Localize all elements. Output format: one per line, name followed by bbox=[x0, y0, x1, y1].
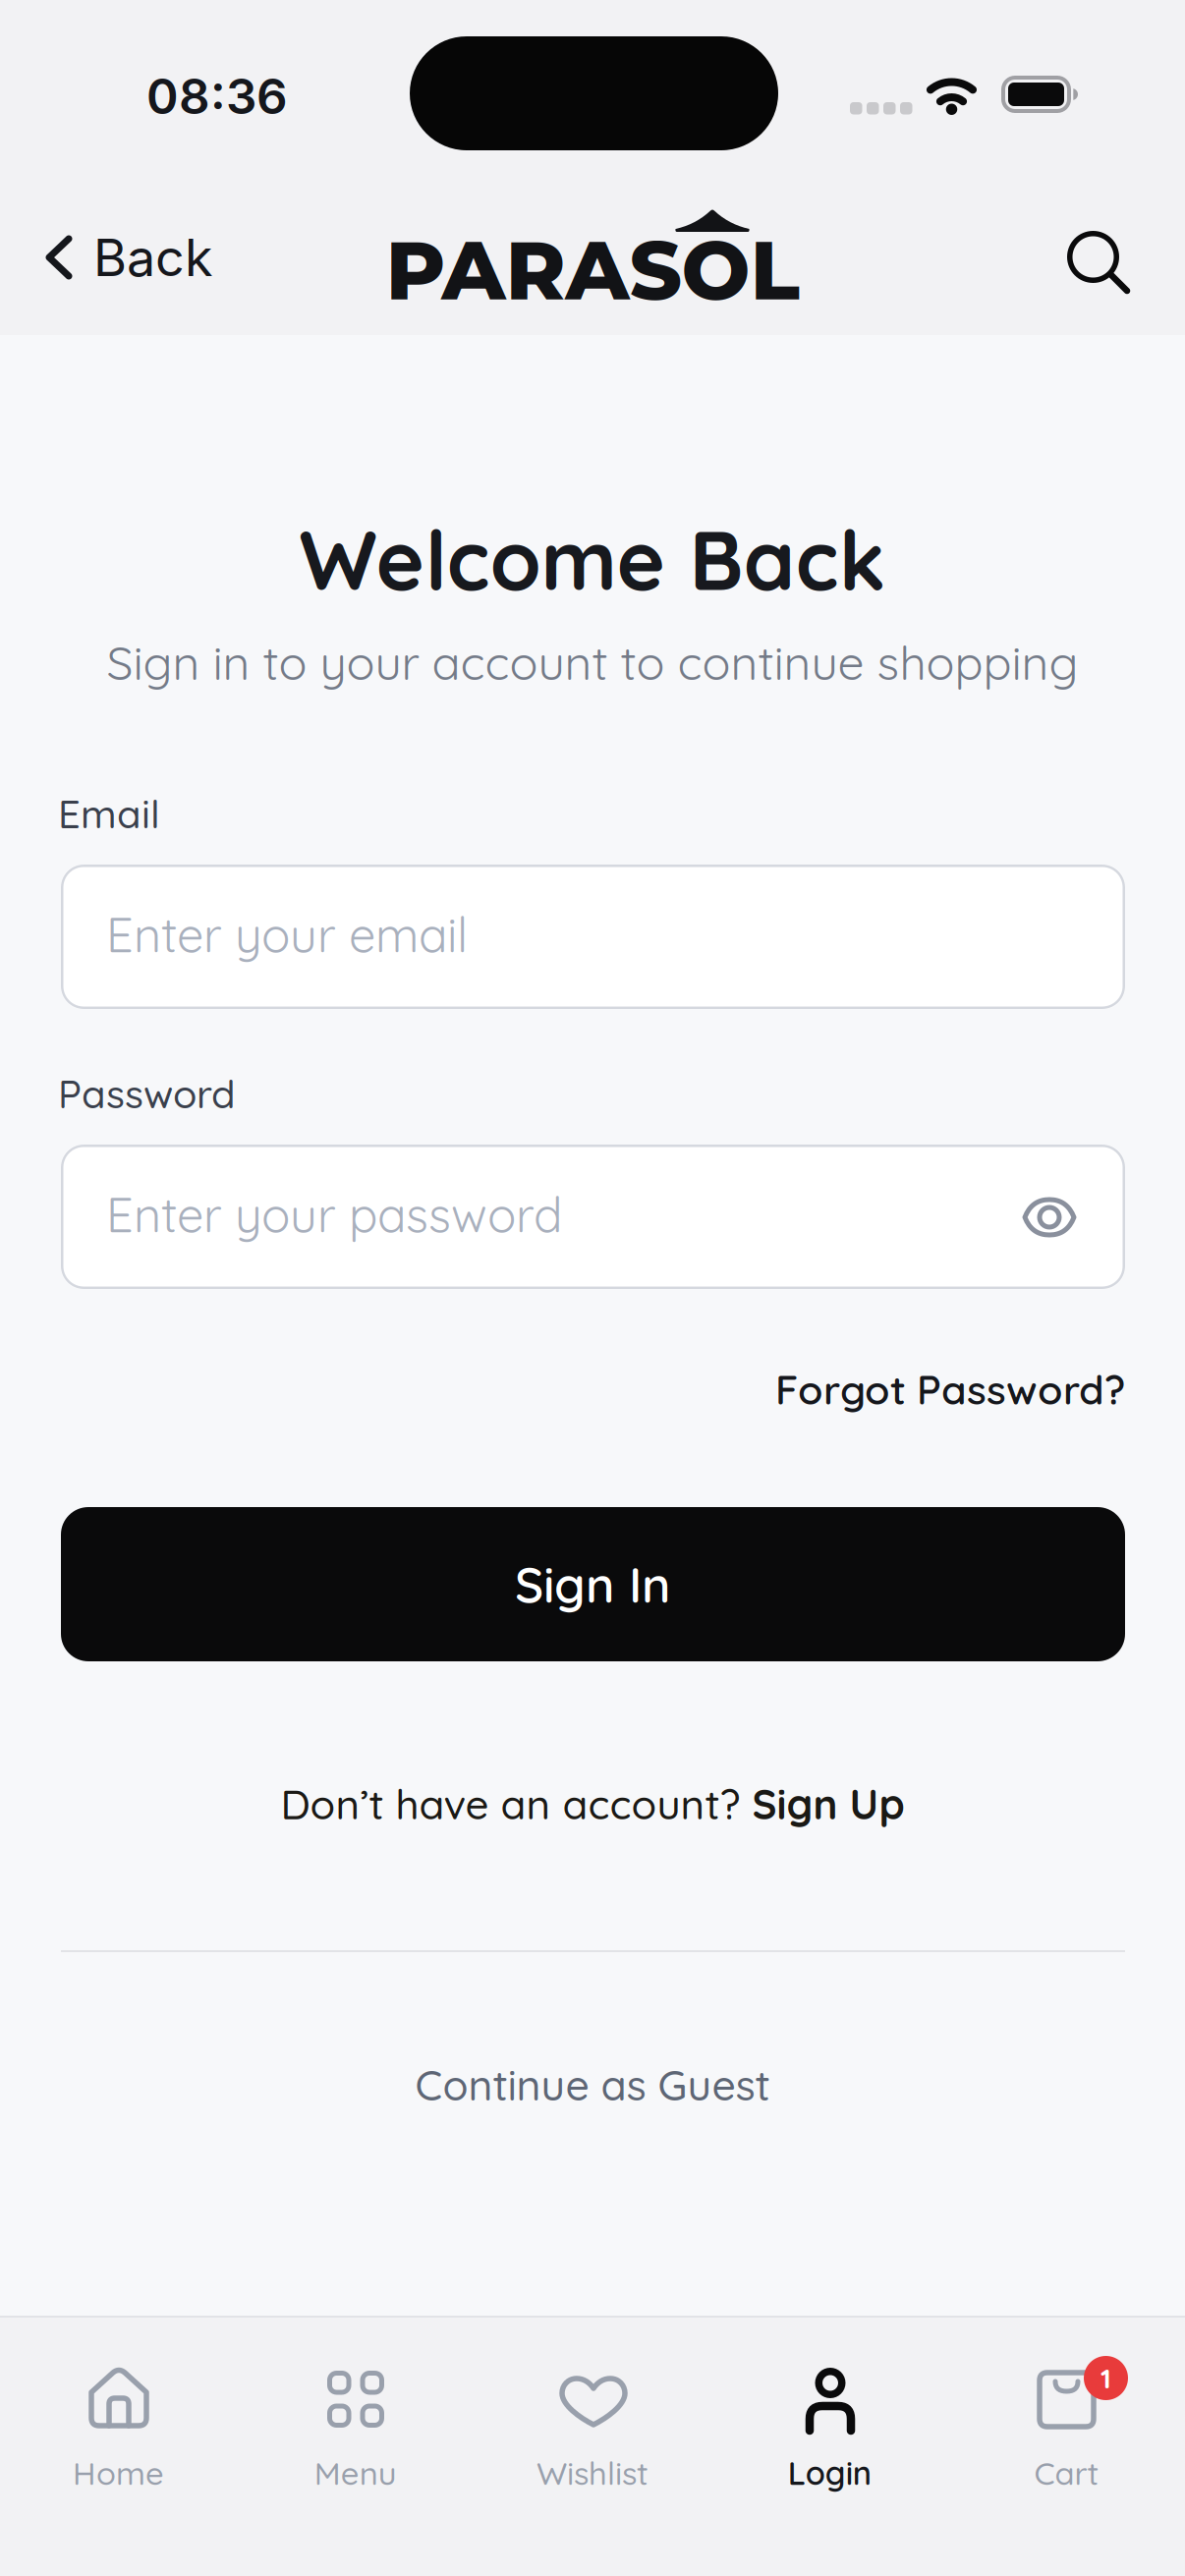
staticText: Continue as Guest bbox=[415, 2059, 770, 2111]
staticText: Forgot Password? bbox=[775, 1364, 1125, 1415]
staticText: Cart bbox=[1034, 2453, 1099, 2493]
button[interactable] bbox=[1023, 1198, 1076, 1237]
button[interactable]: Don’t have an account? Sign Up bbox=[281, 1779, 904, 1829]
button[interactable]: Continue as Guest bbox=[415, 2059, 770, 2111]
staticText: Login bbox=[788, 2453, 871, 2493]
staticText: PARASOL bbox=[386, 221, 799, 320]
staticText: Enter your email bbox=[106, 904, 468, 964]
button[interactable] bbox=[711, 2318, 948, 2576]
staticText: Enter your password bbox=[106, 1184, 562, 1244]
staticText: Menu bbox=[314, 2453, 397, 2493]
button[interactable]: Back bbox=[47, 218, 213, 297]
staticText: Home bbox=[73, 2453, 164, 2493]
button[interactable] bbox=[948, 2318, 1185, 2576]
button[interactable] bbox=[474, 2318, 711, 2576]
staticText: Password bbox=[58, 1069, 236, 1118]
button[interactable]: Sign In bbox=[61, 1507, 1125, 1661]
staticText: 1 bbox=[1100, 2361, 1111, 2395]
button[interactable] bbox=[237, 2318, 474, 2576]
staticText: Sign in to your account to continue shop… bbox=[107, 633, 1078, 692]
button[interactable] bbox=[0, 2318, 237, 2576]
staticText: Email bbox=[58, 789, 160, 838]
staticText: Welcome Back bbox=[299, 507, 886, 611]
staticText: Back bbox=[93, 226, 213, 288]
staticText: 08:36 bbox=[146, 67, 288, 126]
staticText: Sign In bbox=[515, 1553, 671, 1615]
staticText: Wishlist bbox=[536, 2453, 649, 2493]
button[interactable]: Forgot Password? bbox=[775, 1360, 1125, 1419]
button[interactable] bbox=[1067, 231, 1130, 294]
staticText: Don’t have an account? Sign Up bbox=[281, 1779, 904, 1829]
